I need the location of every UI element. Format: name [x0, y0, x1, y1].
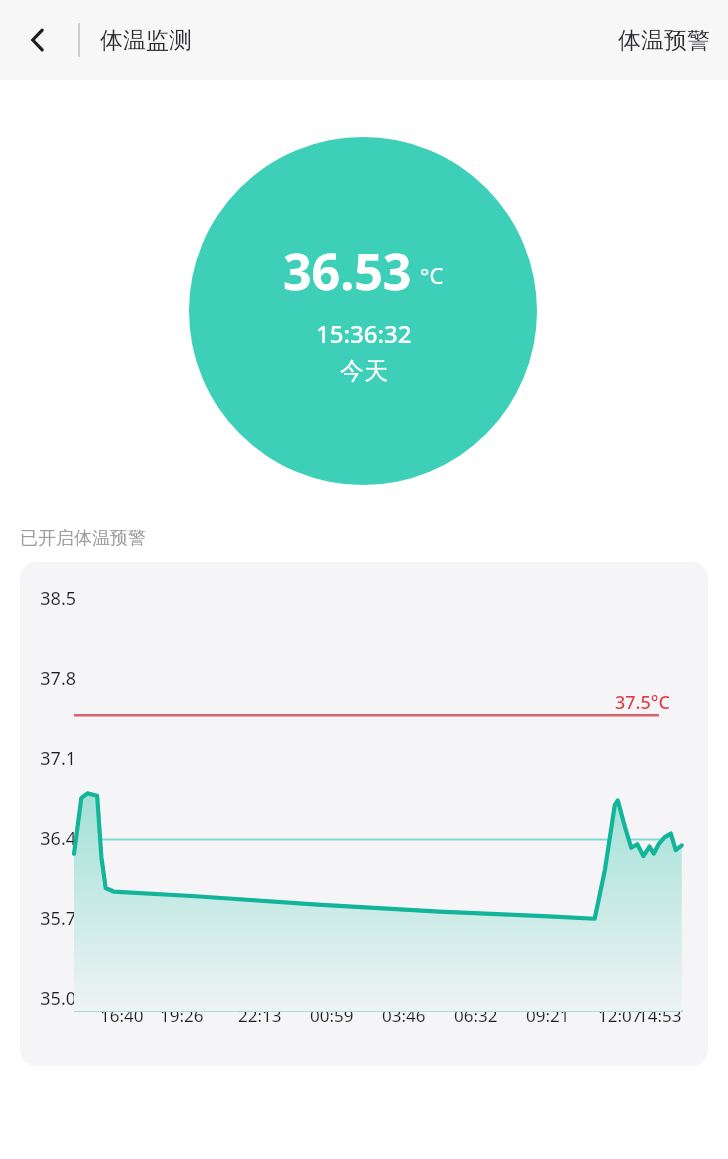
staticText: 19:26	[160, 1004, 204, 1027]
staticText: 03:46	[382, 1004, 426, 1027]
staticText: 今天	[340, 356, 388, 386]
staticText: 09:21	[526, 1004, 570, 1027]
staticText: 36.4	[28, 826, 76, 851]
staticText: 12:07	[598, 1004, 642, 1027]
button[interactable]: 体温预警	[600, 12, 728, 69]
button[interactable]: 36.53	[189, 137, 537, 485]
staticText: 16:40	[100, 1004, 144, 1027]
staticText: 22:13	[238, 1004, 282, 1027]
staticText: 36.53	[283, 237, 412, 305]
staticText: 14:53	[638, 1004, 682, 1027]
staticText: 体温监测	[100, 26, 192, 55]
button[interactable]: 38.5	[20, 562, 708, 1066]
staticText: °C	[420, 260, 444, 290]
staticText: 35.7	[28, 906, 76, 931]
staticText: 15:36:32	[316, 317, 412, 350]
staticText: 38.5	[28, 586, 76, 611]
staticText: 06:32	[454, 1004, 498, 1027]
staticText: 00:59	[310, 1004, 354, 1027]
staticText: 37.5°C	[615, 690, 670, 715]
staticText: 已开启体温预警	[20, 527, 146, 550]
staticText: 37.8	[28, 666, 76, 691]
staticText: 35.0	[28, 986, 76, 1011]
button[interactable]: Back	[10, 12, 66, 68]
staticText: 体温预警	[618, 26, 710, 55]
staticText: 37.1	[28, 746, 76, 771]
